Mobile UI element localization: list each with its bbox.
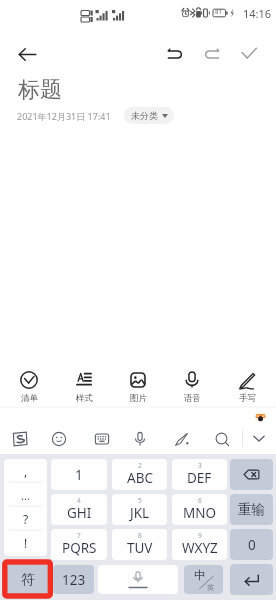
staticText: 未分类 (131, 110, 158, 121)
button[interactable]: Back (4, 38, 38, 70)
staticText: 符 (21, 571, 35, 588)
button[interactable]: Enter (230, 564, 273, 595)
button[interactable]: Search (207, 424, 237, 454)
button[interactable]: TUV (112, 529, 167, 560)
staticText: 重输 (238, 501, 265, 518)
button[interactable]: Backspace (230, 459, 273, 490)
button[interactable]: GHI (51, 494, 107, 525)
button[interactable]: 语音 (167, 365, 217, 404)
staticText: 手写 (239, 393, 256, 404)
button[interactable]: Emoji (44, 424, 74, 454)
button[interactable]: Keyboard (87, 424, 117, 454)
staticText: 81 (215, 8, 222, 16)
staticText: DEF (187, 469, 212, 487)
staticText: 3 (198, 461, 202, 470)
button[interactable]: MNO (172, 494, 227, 525)
button[interactable]: 1 (51, 459, 107, 490)
staticText: MNO (183, 504, 217, 522)
button[interactable]: Done (232, 38, 265, 70)
staticText: 英 (207, 583, 214, 592)
staticText: ! (24, 535, 28, 551)
staticText: 语音 (184, 393, 201, 404)
staticText: TUV (127, 539, 153, 557)
button[interactable]: PQRS (51, 529, 107, 560)
staticText: 4 (77, 496, 81, 505)
button[interactable]: DEF (172, 459, 227, 490)
staticText: 123 (62, 571, 86, 589)
button[interactable]: Sogou input (5, 424, 35, 454)
button[interactable]: Voice input (125, 424, 155, 454)
button[interactable]: 0 (230, 529, 273, 560)
staticText: 中 (194, 568, 206, 582)
button[interactable]: , (4, 459, 47, 483)
button[interactable]: ! (4, 531, 47, 555)
button[interactable]: ? (4, 507, 47, 531)
staticText: GHI (67, 504, 92, 522)
button[interactable]: ... (4, 483, 47, 507)
staticText: 5 (138, 496, 142, 505)
button[interactable]: 清单 (4, 365, 54, 404)
button[interactable]: 手写 (222, 365, 272, 404)
button[interactable]: Switch Chinese English (184, 565, 223, 594)
button[interactable]: Undo (159, 38, 192, 70)
staticText: JKL (130, 504, 150, 522)
button[interactable]: 符 (6, 565, 49, 594)
button[interactable]: Space (98, 565, 178, 594)
staticText: 清单 (21, 393, 38, 404)
staticText: 6 (198, 496, 202, 505)
staticText: 9 (198, 531, 202, 540)
staticText: 样式 (76, 393, 93, 404)
button[interactable]: 未分类 (124, 107, 174, 124)
staticText: ? (23, 511, 29, 527)
button[interactable]: Collapse keyboard (244, 424, 274, 454)
button[interactable]: JKL (112, 494, 167, 525)
staticText: 1 (75, 466, 83, 484)
staticText: 0 (248, 536, 256, 554)
staticText: WXYZ (182, 539, 218, 557)
staticText: ABC (127, 469, 153, 487)
button[interactable]: WXYZ (172, 529, 227, 560)
button[interactable]: 样式 (59, 365, 109, 404)
staticText: 8 (138, 531, 142, 540)
staticText: PQRS (62, 539, 97, 557)
staticText: 14:16 (243, 6, 272, 21)
button[interactable]: 123 (53, 565, 94, 594)
button[interactable]: ABC (112, 459, 167, 490)
button[interactable]: Handwriting (167, 424, 197, 454)
staticText: 2021年12月31日 17:41 (17, 110, 111, 122)
button[interactable]: Redo (195, 38, 228, 70)
button[interactable]: 重输 (230, 494, 273, 525)
staticText: ... (21, 488, 30, 503)
button[interactable]: 图片 (113, 365, 163, 404)
staticText: 7 (77, 531, 81, 540)
staticText: , (24, 463, 28, 479)
button[interactable]: 标题 (18, 76, 62, 104)
staticText: 图片 (130, 393, 147, 404)
staticText: 2 (138, 461, 142, 470)
